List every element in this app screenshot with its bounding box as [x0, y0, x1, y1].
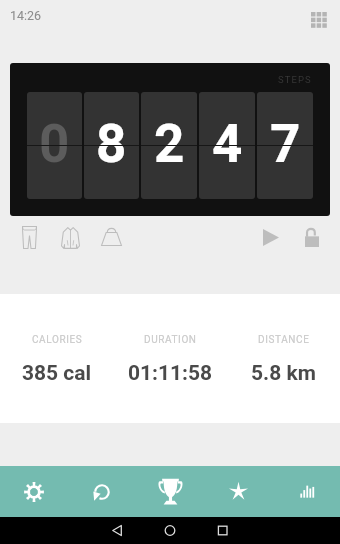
staticText: DURATION: [144, 334, 197, 346]
button[interactable]: Achievements: [136, 466, 204, 517]
staticText: 0: [39, 113, 70, 175]
staticText: DISTANCE: [258, 334, 310, 346]
staticText: 14:26: [10, 8, 42, 23]
button[interactable]: DURATION: [114, 334, 227, 386]
staticText: 4: [212, 113, 243, 175]
staticText: CALORIES: [32, 334, 83, 346]
staticText: 01:11:58: [128, 361, 213, 386]
button[interactable]: Goals: [204, 466, 272, 517]
staticText: STEPS: [278, 74, 312, 85]
button[interactable]: Statistics: [272, 466, 340, 517]
button[interactable]: Bag: [91, 216, 132, 259]
staticText: 5.8 km: [251, 361, 316, 386]
staticText: 7: [270, 113, 301, 175]
staticText: 385 cal: [22, 361, 92, 386]
button[interactable]: Reset: [68, 466, 136, 517]
button[interactable]: Start: [250, 216, 291, 259]
button[interactable]: DISTANCE: [227, 334, 340, 386]
button[interactable]: CALORIES: [0, 334, 114, 386]
staticText: 2: [154, 113, 185, 175]
button[interactable]: Unlock: [291, 216, 332, 259]
button[interactable]: Settings: [0, 466, 68, 517]
button[interactable]: Jacket: [50, 216, 91, 259]
button[interactable]: Apps: [311, 12, 328, 29]
staticText: 8: [96, 113, 127, 175]
button[interactable]: Shorts: [9, 216, 50, 259]
